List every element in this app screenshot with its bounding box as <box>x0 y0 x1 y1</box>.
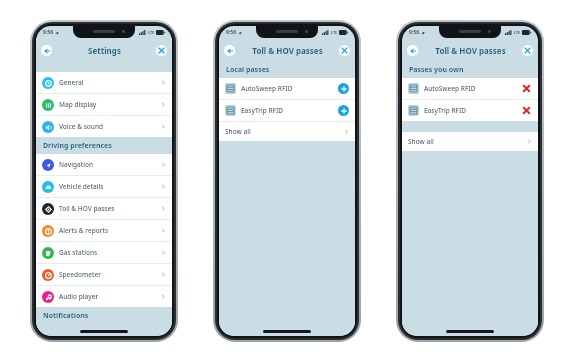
staticText: Toll & HOV passes <box>435 45 506 56</box>
staticText: LTE <box>148 30 154 35</box>
staticText: Toll & HOV passes <box>252 45 323 56</box>
staticText: Voice & sound <box>59 122 103 131</box>
button[interactable]: Back <box>224 45 235 56</box>
staticText: Vehicle details <box>59 182 104 191</box>
button[interactable]: Remove AutoSweep RFID <box>521 83 532 94</box>
staticText: EasyTrip RFID <box>424 106 467 115</box>
button[interactable]: Add AutoSweep RFID <box>338 83 349 94</box>
staticText: Speedometer <box>59 270 101 279</box>
button[interactable]: Add EasyTrip RFID <box>338 105 349 116</box>
staticText: Local passes <box>226 65 270 75</box>
button[interactable]: Alerts & reports <box>36 220 172 241</box>
staticText: Navigation <box>59 160 93 169</box>
button[interactable]: Close <box>522 45 533 56</box>
staticText: General <box>59 78 84 87</box>
staticText: LTE <box>331 30 337 35</box>
staticText: Show all <box>225 127 251 136</box>
button[interactable]: EasyTrip RFID <box>219 100 355 121</box>
staticText: Settings <box>88 45 121 56</box>
button[interactable]: Show all <box>402 132 538 151</box>
button[interactable]: Back <box>407 45 418 56</box>
button[interactable]: Vehicle details <box>36 176 172 197</box>
button[interactable]: Gas stations <box>36 242 172 263</box>
staticText: AutoSweep RFID <box>241 84 293 93</box>
staticText: Map display <box>59 100 97 109</box>
button[interactable]: AutoSweep RFID <box>219 78 355 99</box>
button[interactable]: EasyTrip RFID <box>402 100 538 121</box>
staticText: Toll & HOV passes <box>59 204 115 213</box>
staticText: Gas stations <box>59 248 98 257</box>
button[interactable]: Toll & HOV passes <box>36 198 172 219</box>
staticText: 9:56 <box>226 29 236 36</box>
button[interactable]: Close <box>339 45 350 56</box>
button[interactable]: General <box>36 72 172 93</box>
button[interactable]: Audio player <box>36 286 172 307</box>
staticText: LTE <box>514 30 520 35</box>
button[interactable]: Navigation <box>36 154 172 175</box>
staticText: 9:56 <box>43 29 53 36</box>
staticText: 9:56 <box>409 29 419 36</box>
button[interactable]: Show all <box>219 122 355 141</box>
button[interactable]: Close <box>156 45 167 56</box>
staticText: Notifications <box>43 311 89 321</box>
button[interactable]: Remove EasyTrip RFID <box>521 105 532 116</box>
button[interactable]: Voice & sound <box>36 116 172 137</box>
staticText: Driving preferences <box>43 141 112 151</box>
button[interactable]: Speedometer <box>36 264 172 285</box>
staticText: Passes you own <box>409 65 464 75</box>
staticText: AutoSweep RFID <box>424 84 476 93</box>
staticText: EasyTrip RFID <box>241 106 284 115</box>
button[interactable]: Back <box>41 45 52 56</box>
staticText: Show all <box>408 137 434 146</box>
staticText: Alerts & reports <box>59 226 109 235</box>
button[interactable]: AutoSweep RFID <box>402 78 538 99</box>
button[interactable]: Map display <box>36 94 172 115</box>
staticText: Audio player <box>59 292 99 301</box>
